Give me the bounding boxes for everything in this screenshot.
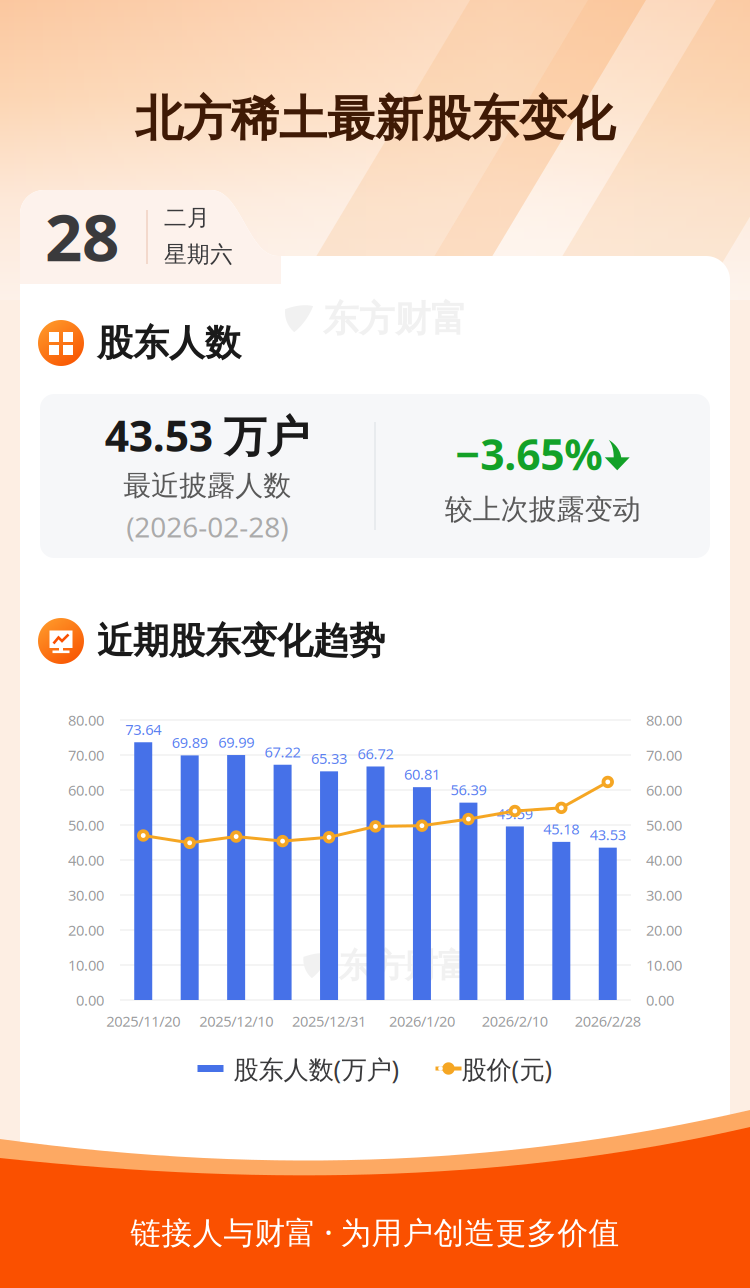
staticText: 近期股东变化趋势	[97, 619, 385, 663]
staticText: 链接人与财富 · 为用户创造更多价值	[130, 1212, 619, 1252]
staticText: 二月	[164, 204, 210, 231]
staticText: 股价(元)	[461, 1052, 552, 1086]
staticText: 45.18	[543, 819, 579, 839]
staticText: 北方稀土最新股东变化	[135, 89, 615, 148]
staticText: 80.00	[68, 710, 104, 730]
staticText: 股东人数	[97, 321, 241, 365]
staticText: 67.22	[265, 742, 301, 761]
staticText: 65.33	[311, 749, 347, 768]
staticText: 70.00	[646, 745, 682, 765]
staticText: 10.00	[68, 955, 104, 975]
staticText: 2025/12/31	[292, 1011, 366, 1031]
staticText: 20.00	[646, 920, 682, 940]
staticText: 较上次披露变动	[445, 492, 641, 526]
staticText: 2026/1/20	[389, 1011, 455, 1031]
staticText: (2026-02-28)	[126, 508, 288, 545]
staticText: 60.00	[68, 780, 104, 800]
staticText: 股东人数(万户)	[233, 1052, 399, 1086]
staticText: 0.00	[646, 990, 674, 1010]
staticText: 0.00	[76, 990, 104, 1010]
staticText: 星期六	[164, 240, 233, 268]
staticText: 2025/11/20	[106, 1011, 180, 1031]
staticText: 40.00	[646, 850, 682, 870]
staticText: 60.81	[404, 764, 440, 784]
staticText: 10.00	[646, 955, 682, 975]
staticText: 2026/2/10	[482, 1011, 548, 1031]
staticText: 40.00	[68, 850, 104, 870]
staticText: 20.00	[68, 920, 104, 940]
staticText: 73.64	[125, 719, 161, 739]
staticText: 69.89	[172, 733, 208, 752]
staticText: 28	[45, 193, 119, 279]
staticText: −3.65%	[455, 425, 602, 482]
staticText: 2026/2/28	[575, 1011, 641, 1031]
staticText: 30.00	[646, 885, 682, 905]
staticText: 东方财富	[338, 945, 470, 986]
staticText: 60.00	[646, 780, 682, 800]
staticText: 50.00	[68, 815, 104, 835]
staticText: 50.00	[646, 815, 682, 835]
staticText: 43.53 万户	[105, 407, 310, 464]
staticText: 30.00	[68, 885, 104, 905]
staticText: 最近披露人数	[123, 468, 291, 503]
staticText: 43.53	[590, 825, 626, 844]
staticText: 2025/12/10	[199, 1011, 273, 1031]
staticText: 东方财富	[323, 297, 467, 341]
staticText: 69.99	[218, 732, 254, 752]
staticText: 49.59	[497, 804, 533, 823]
staticText: 56.39	[450, 780, 486, 799]
staticText: 70.00	[68, 745, 104, 765]
staticText: 80.00	[646, 710, 682, 730]
staticText: 66.72	[357, 744, 393, 763]
